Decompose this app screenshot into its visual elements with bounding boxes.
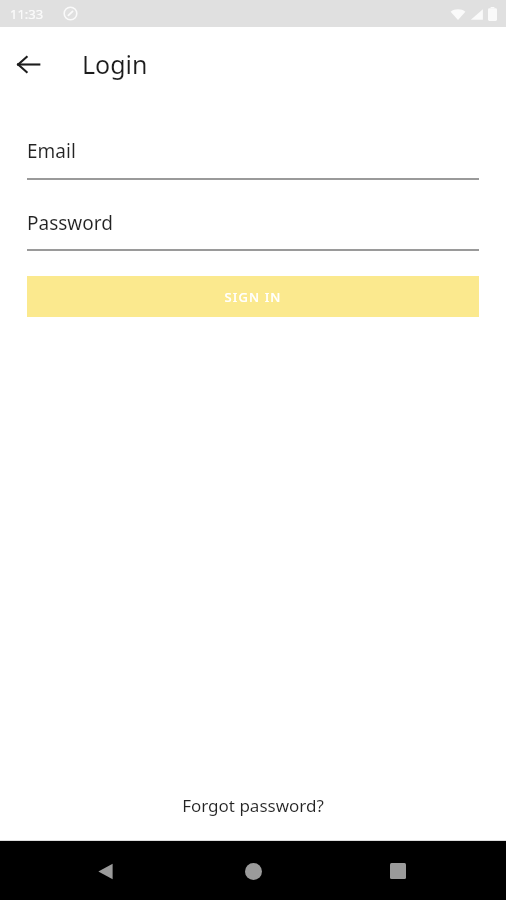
button[interactable]: Recent apps [374,847,422,895]
button[interactable]: SIGN IN [27,276,479,317]
button[interactable]: Forgot password? [170,789,336,821]
staticText: Forgot password? [182,794,324,816]
button[interactable]: Password [27,210,479,251]
staticText: Email [27,138,76,164]
button[interactable]: Email [27,138,479,180]
staticText: 11:33 [10,5,44,23]
staticText: Password [27,210,113,236]
button[interactable]: Back [81,847,129,895]
button[interactable]: Back [4,40,52,88]
button[interactable]: Home [229,847,277,895]
staticText: SIGN IN [224,288,282,306]
staticText: Login [82,47,148,81]
